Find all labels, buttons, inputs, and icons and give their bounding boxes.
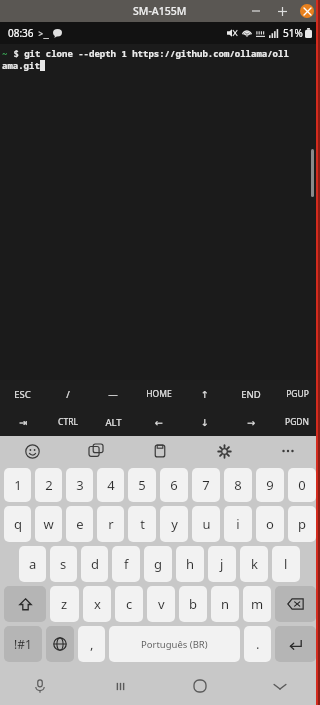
staticText: !#1 — [14, 636, 32, 652]
button[interactable]: Settings — [192, 436, 256, 466]
button[interactable]: x — [83, 586, 111, 622]
button[interactable]: c — [115, 586, 143, 622]
button[interactable]: i — [224, 506, 252, 542]
button[interactable]: h — [176, 546, 204, 582]
button[interactable]: k — [240, 546, 268, 582]
button[interactable]: , — [78, 626, 105, 662]
button[interactable]: v — [147, 586, 175, 622]
button[interactable]: ← — [136, 408, 182, 436]
staticText: HOME — [146, 388, 172, 400]
staticText: — — [108, 388, 118, 401]
button[interactable]: — — [90, 380, 136, 408]
button[interactable]: PGDN — [274, 408, 320, 436]
staticText: END — [241, 388, 261, 401]
button[interactable]: 7 — [192, 468, 220, 502]
button[interactable]: Emoji — [0, 436, 64, 466]
button[interactable]: l — [272, 546, 300, 582]
button[interactable]: Backspace — [275, 586, 316, 622]
button[interactable]: More — [256, 436, 320, 466]
staticText: p — [298, 515, 306, 533]
button[interactable]: y — [160, 506, 188, 542]
button[interactable]: Translate — [64, 436, 128, 466]
button[interactable]: 6 — [160, 468, 188, 502]
button[interactable]: HOME — [136, 380, 182, 408]
staticText: 5 — [138, 476, 146, 494]
button[interactable]: 1 — [4, 468, 31, 502]
button[interactable]: t — [128, 506, 156, 542]
button[interactable]: 8 — [224, 468, 252, 502]
button[interactable]: ESC — [0, 380, 45, 408]
button[interactable]: m — [243, 586, 271, 622]
staticText: SM-A155M — [133, 4, 187, 18]
staticText: → — [247, 417, 255, 428]
button[interactable]: 5 — [128, 468, 156, 502]
button[interactable]: u — [192, 506, 220, 542]
staticText: 9 — [266, 476, 274, 494]
button[interactable]: CTRL — [45, 408, 90, 436]
button[interactable]: p — [288, 506, 316, 542]
button[interactable]: Português (BR) — [109, 626, 240, 662]
button[interactable]: r — [97, 506, 124, 542]
button[interactable]: s — [50, 546, 77, 582]
button[interactable]: . — [244, 626, 271, 662]
staticText: f — [124, 555, 129, 573]
button[interactable]: Recents — [80, 667, 160, 705]
button[interactable]: Enter — [275, 626, 316, 662]
button[interactable]: Home — [160, 667, 240, 705]
button[interactable]: Minimize — [248, 3, 264, 19]
button[interactable]: Maximize — [274, 3, 290, 19]
button[interactable]: d — [81, 546, 108, 582]
staticText: PGDN — [285, 416, 309, 428]
button[interactable]: ↓ — [182, 408, 228, 436]
button[interactable]: g — [144, 546, 172, 582]
button[interactable]: PGUP — [274, 380, 320, 408]
staticText: ESC — [14, 388, 31, 401]
staticText: 8 — [234, 476, 242, 494]
staticText: i — [236, 515, 240, 533]
button[interactable]: f — [112, 546, 140, 582]
staticText: b — [189, 595, 197, 613]
staticText: ALT — [105, 416, 122, 429]
staticText: k — [251, 555, 258, 573]
button[interactable]: Clipboard — [128, 436, 192, 466]
staticText: a — [29, 555, 37, 573]
staticText: m — [251, 595, 264, 613]
button[interactable]: Voice input — [0, 667, 80, 705]
button[interactable]: 3 — [66, 468, 93, 502]
staticText: z — [61, 595, 68, 613]
button[interactable]: z — [50, 586, 79, 622]
button[interactable]: 9 — [256, 468, 284, 502]
button[interactable]: ⇥ — [0, 408, 45, 436]
staticText: y — [171, 515, 178, 533]
staticText: 0 — [298, 476, 306, 494]
button[interactable]: w — [35, 506, 62, 542]
button[interactable]: b — [179, 586, 207, 622]
button[interactable]: j — [208, 546, 236, 582]
button[interactable]: Close — [300, 4, 314, 18]
button[interactable]: END — [228, 380, 274, 408]
staticText: q — [14, 515, 22, 533]
button[interactable]: → — [228, 408, 274, 436]
staticText: ↓ — [201, 417, 209, 428]
button[interactable]: e — [66, 506, 93, 542]
button[interactable]: Change language — [46, 626, 74, 662]
button[interactable]: 0 — [288, 468, 316, 502]
button[interactable]: !#1 — [4, 626, 42, 662]
button[interactable]: ↑ — [182, 380, 228, 408]
staticText: 6 — [170, 476, 178, 494]
button[interactable]: / — [45, 380, 90, 408]
button[interactable]: Hide keyboard — [240, 667, 320, 705]
staticText: g — [154, 555, 162, 573]
staticText: ⇥ — [19, 417, 27, 428]
button[interactable]: ALT — [90, 408, 136, 436]
button[interactable]: 4 — [97, 468, 124, 502]
staticText: r — [108, 515, 114, 533]
button[interactable]: n — [211, 586, 239, 622]
button[interactable]: a — [19, 546, 46, 582]
staticText: x — [94, 595, 101, 613]
button[interactable]: Shift — [4, 586, 46, 622]
button[interactable]: o — [256, 506, 284, 542]
button[interactable]: q — [4, 506, 31, 542]
button[interactable]: 2 — [35, 468, 62, 502]
staticText: 1 — [14, 476, 22, 494]
